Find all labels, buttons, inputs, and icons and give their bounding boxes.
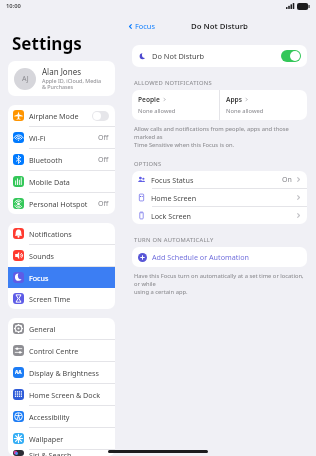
staticText: Alan Jones	[42, 66, 81, 77]
button[interactable]: Bluetooth	[8, 149, 115, 170]
button[interactable]: Personal Hotspot	[8, 193, 115, 214]
staticText: Do Not Disturb	[152, 51, 205, 61]
staticText: AJ	[22, 74, 29, 84]
staticText: OPTIONS	[134, 160, 162, 168]
staticText: Wi-Fi	[29, 133, 46, 143]
button[interactable]: AJ	[8, 61, 115, 96]
staticText: Off	[98, 199, 109, 209]
button[interactable]: General	[8, 318, 115, 339]
staticText: TURN ON AUTOMATICALLY	[134, 236, 214, 244]
button[interactable]: Accessibility	[8, 406, 115, 427]
staticText: General	[29, 324, 56, 334]
staticText: Airplane Mode	[29, 111, 79, 121]
button[interactable]: Do Not Disturb	[132, 45, 307, 67]
staticText: Focus	[135, 21, 155, 31]
button[interactable]: Screen Time	[8, 288, 115, 309]
staticText: 10:00	[6, 2, 21, 10]
button[interactable]: Wallpaper	[8, 428, 115, 449]
staticText: ALLOWED NOTIFICATIONS	[134, 79, 212, 87]
staticText: AA	[15, 369, 22, 376]
staticText: None allowed	[138, 107, 176, 115]
button[interactable]: Siri & Search	[8, 450, 115, 456]
staticText: Sounds	[29, 251, 55, 261]
staticText: Personal Hotspot	[29, 199, 88, 209]
staticText: Screen Time	[29, 294, 71, 304]
staticText: Have this Focus turn on automatically at…	[134, 272, 304, 296]
staticText: Home Screen	[151, 193, 197, 203]
button[interactable]: Home Screen & Dock	[8, 384, 115, 405]
staticText: Siri & Search	[29, 450, 72, 456]
button[interactable]: AA	[8, 362, 115, 383]
button[interactable]: Sounds	[8, 245, 115, 266]
staticText: Focus	[29, 273, 49, 283]
staticText: On	[282, 175, 292, 185]
staticText: Apps	[226, 95, 242, 104]
staticText: Focus Status	[151, 175, 194, 185]
staticText: Do Not Disturb	[191, 21, 248, 32]
staticText: Home Screen & Dock	[29, 390, 100, 400]
button[interactable]: Focus	[8, 267, 115, 288]
button[interactable]: Notifications	[8, 223, 115, 244]
staticText: None allowed	[226, 107, 264, 115]
button[interactable]: Add Schedule or Automation	[132, 247, 307, 267]
staticText: Bluetooth	[29, 155, 63, 165]
staticText: Mobile Data	[29, 177, 70, 187]
staticText: Control Centre	[29, 346, 79, 356]
staticText: Allow calls and notifications from peopl…	[134, 125, 304, 149]
staticText: Off	[98, 133, 109, 143]
button[interactable]: Wi-Fi	[8, 127, 115, 148]
button[interactable]: Lock Screen	[132, 207, 307, 224]
staticText: Off	[98, 155, 109, 165]
staticText: Apple ID, iCloud, Media & Purchases	[42, 77, 101, 91]
button[interactable]: Control Centre	[8, 340, 115, 361]
button[interactable]: Airplane Mode	[8, 105, 115, 126]
button[interactable]: Apps	[220, 90, 307, 120]
staticText: Settings	[12, 32, 82, 55]
staticText: Lock Screen	[151, 211, 192, 221]
button[interactable]: Focus Status	[132, 171, 307, 188]
staticText: People	[138, 95, 160, 104]
button[interactable]: People	[132, 90, 219, 120]
staticText: Accessibility	[29, 412, 70, 422]
staticText: Wallpaper	[29, 434, 64, 444]
staticText: Notifications	[29, 229, 72, 239]
button[interactable]: Home Screen	[132, 189, 307, 206]
other: Do Not Disturb toggle	[281, 50, 301, 62]
button[interactable]: Mobile Data	[8, 171, 115, 192]
button[interactable]: Focus	[123, 19, 159, 33]
staticText: Display & Brightness	[29, 368, 99, 378]
staticText: Add Schedule or Automation	[152, 252, 249, 262]
